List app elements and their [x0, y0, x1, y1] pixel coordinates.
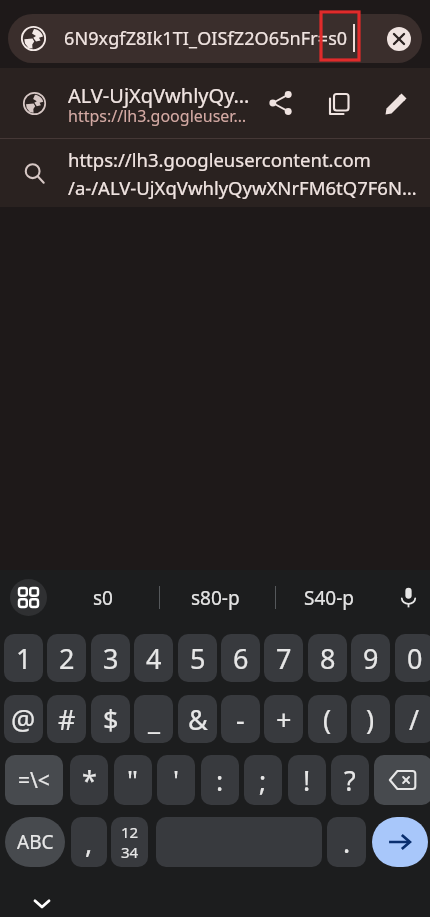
staticText: 6N9xgfZ8Ik1TI_OISfZ2O65nFr=s0: [64, 26, 348, 51]
staticText: /: [409, 701, 420, 738]
button[interactable]: Enter: [372, 817, 428, 867]
button[interactable]: 2: [47, 634, 86, 682]
staticText: &: [188, 701, 208, 738]
staticText: $: [103, 701, 119, 738]
button[interactable]: 9: [351, 634, 390, 682]
staticText: ABC: [17, 829, 54, 855]
button[interactable]: Hide keyboard: [20, 881, 64, 917]
button[interactable]: Share: [254, 76, 308, 130]
button[interactable]: ;: [244, 755, 282, 805]
button[interactable]: Edit: [369, 76, 423, 130]
button[interactable]: (: [308, 695, 347, 743]
button[interactable]: Voice input: [386, 575, 430, 619]
button[interactable]: 5: [178, 634, 217, 682]
staticText: ): [366, 701, 375, 738]
button[interactable]: Copy: [311, 76, 365, 130]
button[interactable]: ": [114, 755, 152, 805]
button[interactable]: =\<: [5, 755, 63, 805]
staticText: 1: [16, 640, 32, 677]
button[interactable]: 8: [308, 634, 347, 682]
staticText: 6: [233, 640, 249, 677]
button[interactable]: *: [70, 755, 108, 805]
staticText: s80-p: [191, 585, 240, 611]
staticText: ': [173, 762, 180, 799]
staticText: @: [11, 701, 36, 738]
button[interactable]: /: [395, 695, 430, 743]
staticText: 4: [146, 640, 162, 677]
staticText: 34: [121, 842, 139, 862]
button[interactable]: Clear text: [376, 16, 422, 62]
button[interactable]: Backspace: [374, 755, 430, 805]
staticText: 8: [320, 640, 336, 677]
staticText: .: [343, 824, 351, 861]
staticText: +: [276, 701, 292, 738]
staticText: ALV-UjXqVwhlyQy…: [68, 82, 250, 109]
button[interactable]: s80-p: [165, 570, 265, 625]
staticText: 5: [190, 640, 206, 677]
button[interactable]: :: [201, 755, 239, 805]
staticText: :: [216, 762, 224, 799]
staticText: 3: [103, 640, 119, 677]
button[interactable]: 1: [4, 634, 43, 682]
button[interactable]: ': [157, 755, 195, 805]
button[interactable]: Space: [156, 817, 322, 867]
button[interactable]: -: [221, 695, 260, 743]
button[interactable]: $: [91, 695, 130, 743]
button[interactable]: ): [351, 695, 390, 743]
staticText: ;: [259, 762, 267, 799]
staticText: ": [127, 762, 139, 799]
staticText: ?: [344, 762, 356, 799]
button[interactable]: .: [327, 817, 366, 867]
staticText: 0: [407, 640, 423, 677]
button[interactable]: ALV-UjXqVwhlyQy…: [0, 68, 430, 138]
button[interactable]: _: [134, 695, 173, 743]
staticText: https://lh3.googleuser…: [68, 105, 247, 127]
button[interactable]: 4: [134, 634, 173, 682]
staticText: s0: [93, 585, 113, 611]
staticText: -: [236, 701, 245, 738]
button[interactable]: #: [47, 695, 86, 743]
button[interactable]: @: [4, 695, 43, 743]
button[interactable]: S40-p: [279, 570, 379, 625]
button[interactable]: 0: [395, 634, 430, 682]
button[interactable]: Keyboard toolbar: [10, 579, 47, 616]
button[interactable]: &: [178, 695, 217, 743]
staticText: https://lh3.googleusercontent.com: [68, 147, 371, 172]
button[interactable]: ?: [331, 755, 369, 805]
button[interactable]: s0: [53, 570, 153, 625]
button[interactable]: 3: [91, 634, 130, 682]
staticText: /a-/ALV-UjXqVwhlyQywXNrFM6tQ7F6N…: [68, 175, 417, 200]
button[interactable]: https://lh3.googleusercontent.com: [0, 139, 430, 207]
staticText: _: [148, 701, 160, 738]
button[interactable]: +: [264, 695, 303, 743]
staticText: 2: [59, 640, 75, 677]
staticText: S40-p: [304, 585, 354, 611]
staticText: 9: [363, 640, 379, 677]
staticText: =\<: [18, 766, 50, 795]
staticText: 7: [276, 640, 292, 677]
staticText: 12: [121, 822, 139, 842]
button[interactable]: 6: [221, 634, 260, 682]
staticText: *: [82, 762, 97, 799]
button[interactable]: !: [288, 755, 326, 805]
staticText: ,: [85, 824, 93, 861]
button[interactable]: 6N9xgfZ8Ik1TI_OISfZ2O65nFr=s0: [8, 14, 422, 63]
staticText: (: [323, 701, 332, 738]
button[interactable]: 12: [111, 817, 148, 867]
button[interactable]: 7: [264, 634, 303, 682]
button[interactable]: ABC: [5, 817, 65, 867]
staticText: !: [303, 762, 311, 799]
button[interactable]: ,: [71, 817, 107, 867]
staticText: #: [58, 701, 76, 738]
